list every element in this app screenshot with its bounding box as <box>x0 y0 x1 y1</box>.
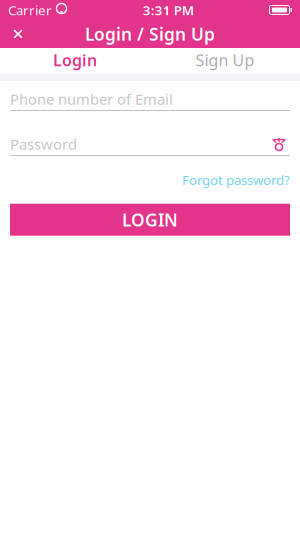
staticText: Login <box>53 49 97 71</box>
button[interactable]: Sign Up <box>150 48 300 74</box>
staticText: Sign Up <box>195 49 254 71</box>
staticText: Password <box>10 134 77 154</box>
button[interactable]: Close <box>0 19 36 49</box>
button[interactable]: Forgot password? <box>182 167 290 193</box>
staticText: LOGIN <box>122 208 178 231</box>
button[interactable]: LOGIN <box>10 204 290 236</box>
staticText: Phone number of Email <box>10 89 173 109</box>
staticText: Login / Sign Up <box>85 22 215 45</box>
button[interactable]: Login <box>0 48 150 74</box>
button[interactable]: Show password <box>268 135 290 153</box>
staticText: 3:31 PM <box>143 1 194 19</box>
staticText: Carrier <box>8 1 52 19</box>
staticText: Forgot password? <box>182 171 290 189</box>
